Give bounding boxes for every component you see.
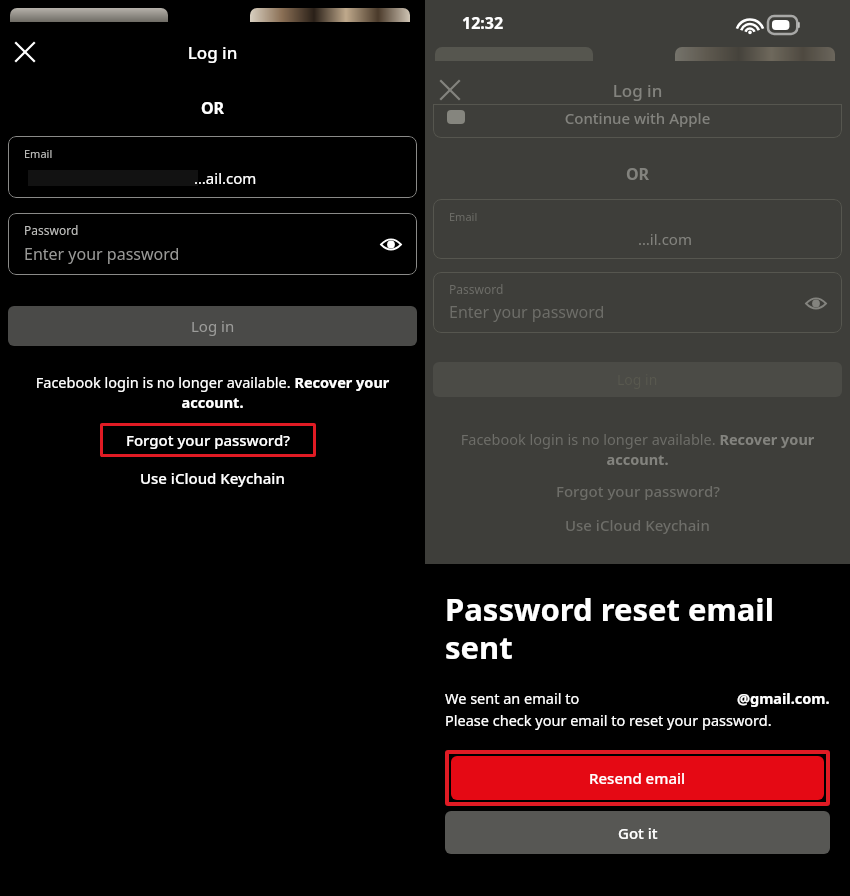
button[interactable]: Use iCloud Keychain [425,512,850,538]
staticText: Use iCloud Keychain [565,515,710,535]
staticText: Resend email [589,768,686,788]
staticText: Password reset email sent [445,588,830,668]
staticText: …ail.com [194,168,257,188]
staticText: Log in [0,41,425,64]
staticText: Enter your password [449,301,605,323]
staticText: Log in [191,316,235,336]
staticText: Email [24,146,53,161]
staticText: Log in [425,79,850,102]
staticText: OR [425,163,850,185]
staticText: Email [449,209,478,224]
staticText: Facebook login is no longer available. R… [14,372,411,412]
button[interactable]: Close [431,71,469,109]
button[interactable]: Show password [373,226,409,262]
button[interactable]: Got it [445,811,830,854]
button[interactable]: Log in [8,306,417,346]
button[interactable]: Close [6,33,44,71]
button[interactable]: Show password [798,285,834,321]
staticText: Password [24,222,79,238]
staticText: Please check your email to reset your pa… [445,710,772,730]
button[interactable]: Use iCloud Keychain [0,464,425,492]
staticText: Log in [617,370,658,389]
staticText: 12:32 [462,12,504,34]
button[interactable]: Email [433,199,842,259]
staticText: Forgot your password? [126,430,290,450]
staticText: …il.com [638,229,692,249]
staticText: Password [449,281,504,297]
button[interactable]: Password [8,213,417,275]
button[interactable]: Forgot your password? [100,423,316,457]
staticText: Facebook login is no longer available. R… [439,429,836,469]
staticText: Continue with Apple [433,108,842,128]
staticText: Enter your password [24,243,180,265]
button[interactable]: Continue with Apple [433,104,842,138]
staticText: Forgot your password? [556,481,720,501]
staticText: OR [0,97,425,119]
button[interactable]: Email [8,136,417,198]
button[interactable]: Resend email [451,756,824,800]
button[interactable]: Password [433,272,842,333]
staticText: We sent an email to [445,688,580,708]
staticText: @gmail.com. [737,688,830,708]
button[interactable]: Forgot your password? [425,478,850,504]
staticText: Use iCloud Keychain [140,468,285,488]
staticText: Got it [618,823,658,843]
